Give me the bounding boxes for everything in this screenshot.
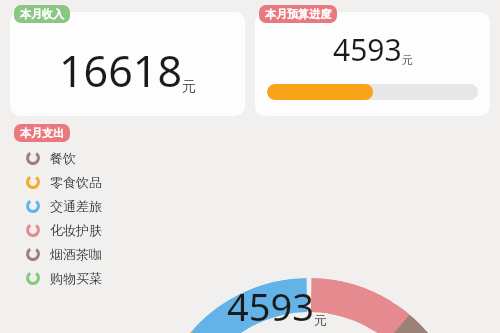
button[interactable]: 购物买菜 xyxy=(0,266,170,290)
staticText: 本月收入 xyxy=(20,7,64,21)
button[interactable]: 本月支出 xyxy=(14,124,70,142)
button[interactable]: 交通差旅 xyxy=(0,194,170,218)
staticText: 本月预算进度 xyxy=(265,7,331,21)
button[interactable]: 16618 xyxy=(10,12,245,116)
button[interactable]: 本月收入 xyxy=(14,5,70,23)
staticText: 元 xyxy=(314,312,327,328)
staticText: 4593 xyxy=(333,29,402,70)
other: Expense breakdown donut chart xyxy=(0,122,500,333)
button[interactable]: 烟酒茶咖 xyxy=(0,242,170,266)
staticText: 元 xyxy=(402,53,413,67)
staticText: 餐饮 xyxy=(50,150,76,166)
staticText: 零食饮品 xyxy=(50,174,102,190)
button[interactable]: 本月预算进度 xyxy=(259,5,337,23)
button[interactable]: 4593 xyxy=(255,12,490,116)
staticText: 元 xyxy=(182,78,196,96)
staticText: 烟酒茶咖 xyxy=(50,246,102,262)
staticText: 化妆护肤 xyxy=(50,222,102,238)
staticText: 4593 xyxy=(227,280,314,332)
button[interactable]: 餐饮 xyxy=(0,146,170,170)
staticText: 本月支出 xyxy=(20,126,64,140)
button[interactable]: 化妆护肤 xyxy=(0,218,170,242)
staticText: 购物买菜 xyxy=(50,270,102,286)
staticText: 16618 xyxy=(59,41,182,100)
button[interactable]: 零食饮品 xyxy=(0,170,170,194)
staticText: 交通差旅 xyxy=(50,198,102,214)
